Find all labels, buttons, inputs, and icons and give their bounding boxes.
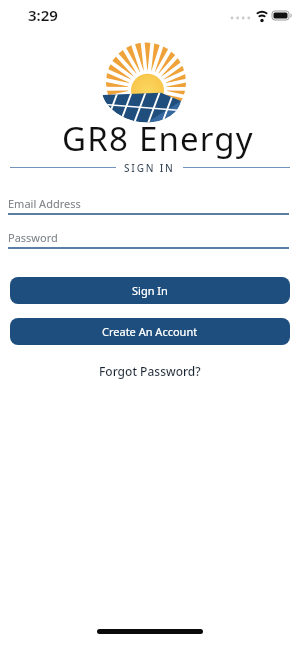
staticText: Sign In xyxy=(132,283,168,298)
staticText: Forgot Password? xyxy=(99,363,201,379)
staticText: Email Address xyxy=(8,196,81,211)
staticText: Create An Account xyxy=(102,324,198,339)
staticText: 3:29 xyxy=(28,5,58,25)
button[interactable]: Forgot Password? xyxy=(95,363,205,379)
staticText: Password xyxy=(8,230,58,245)
button[interactable]: Password xyxy=(8,226,289,249)
button[interactable]: Sign In xyxy=(10,277,290,304)
staticText: GR8 Energy xyxy=(8,116,300,161)
button[interactable]: Email Address xyxy=(8,192,289,215)
button[interactable]: Create An Account xyxy=(10,318,290,345)
staticText: SIGN IN xyxy=(124,161,175,174)
